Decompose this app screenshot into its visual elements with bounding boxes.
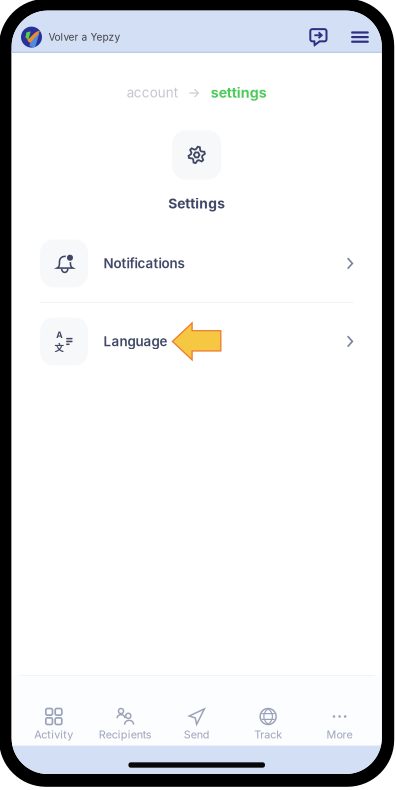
staticText: Activity <box>34 728 73 741</box>
staticText: Track <box>254 728 282 741</box>
button[interactable]: Messages <box>304 23 342 51</box>
staticText: settings <box>211 84 267 101</box>
button[interactable]: More <box>304 676 375 746</box>
staticText: account <box>127 84 178 101</box>
staticText: Recipients <box>99 728 152 741</box>
button[interactable]: account <box>127 84 178 101</box>
staticText: 文 <box>54 340 64 354</box>
button[interactable]: A <box>40 303 353 380</box>
staticText: Settings <box>168 195 225 212</box>
staticText: Language <box>104 333 168 349</box>
staticText: Volver a Yepzy <box>49 31 121 43</box>
button[interactable]: Recipients <box>89 676 161 746</box>
staticText: More <box>327 728 353 741</box>
button[interactable]: Activity <box>18 676 89 746</box>
button[interactable]: settings <box>211 84 267 101</box>
button[interactable]: Menu <box>342 23 377 51</box>
staticText: → <box>188 84 201 101</box>
staticText: Send <box>184 728 210 741</box>
staticText: A <box>56 329 63 341</box>
staticText: Notifications <box>104 255 185 271</box>
button[interactable]: Track <box>232 676 304 746</box>
button[interactable]: Send <box>161 676 232 746</box>
button[interactable]: Notifications <box>40 225 353 302</box>
